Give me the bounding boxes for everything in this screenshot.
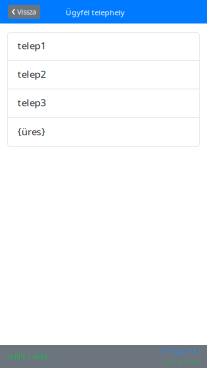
staticText: Ügyfél telephely — [65, 7, 124, 17]
staticText: telep3 — [17, 96, 46, 109]
button[interactable]: telep3 — [7, 89, 199, 118]
staticText: telep1 — [17, 39, 46, 52]
staticText: {üres} — [17, 125, 45, 138]
staticText: telep2 — [17, 67, 46, 81]
staticText: 3.0.102.17547 — [163, 358, 199, 366]
staticText: sERPa / Akta — [7, 352, 48, 361]
button[interactable]: Vissza — [8, 5, 40, 19]
button[interactable]: {üres} — [7, 118, 199, 146]
staticText: © ProgEn Kft. — [159, 347, 199, 355]
staticText: Vissza — [17, 7, 36, 16]
button[interactable]: telep1 — [7, 32, 199, 61]
button[interactable]: telep2 — [7, 61, 199, 89]
